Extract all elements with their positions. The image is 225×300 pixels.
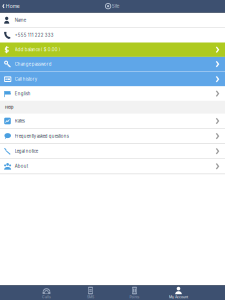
button[interactable]: Change password xyxy=(0,57,225,71)
staticText: Add balance ( $ 0.00 ) xyxy=(15,47,61,52)
staticText: Call history xyxy=(15,77,37,82)
button[interactable]: Calls xyxy=(24,285,68,300)
staticText: Site xyxy=(112,3,120,9)
button[interactable]: Name xyxy=(0,13,225,27)
staticText: +555 111 222 333 xyxy=(15,33,54,38)
button[interactable]: Call history xyxy=(0,72,225,86)
staticText: Name xyxy=(15,18,26,23)
staticText: Points xyxy=(129,295,139,299)
button[interactable]: Add balance ( $ 0.00 ) xyxy=(0,42,225,57)
staticText: Help xyxy=(5,105,13,110)
staticText: About xyxy=(15,164,28,169)
button[interactable]: Home xyxy=(0,0,20,13)
button[interactable]: English xyxy=(0,86,225,101)
staticText: Rates xyxy=(15,118,25,124)
button[interactable]: +555 111 222 333 xyxy=(0,28,225,42)
button[interactable]: SMS xyxy=(68,285,112,300)
button[interactable]: Rates xyxy=(0,114,225,128)
staticText: Legal notice xyxy=(15,149,38,154)
staticText: Calls xyxy=(42,295,51,299)
staticText: Frequently asked questions xyxy=(15,133,69,139)
staticText: SMS xyxy=(87,295,94,299)
button[interactable]: Legal notice xyxy=(0,144,225,158)
button[interactable]: About xyxy=(0,159,225,173)
staticText: Home xyxy=(6,3,20,9)
button[interactable]: Points xyxy=(112,285,156,300)
button[interactable]: Frequently asked questions xyxy=(0,129,225,143)
staticText: My Account xyxy=(169,295,188,299)
staticText: Change password xyxy=(15,61,52,67)
staticText: English xyxy=(15,91,31,96)
button[interactable]: My Account xyxy=(156,285,200,300)
